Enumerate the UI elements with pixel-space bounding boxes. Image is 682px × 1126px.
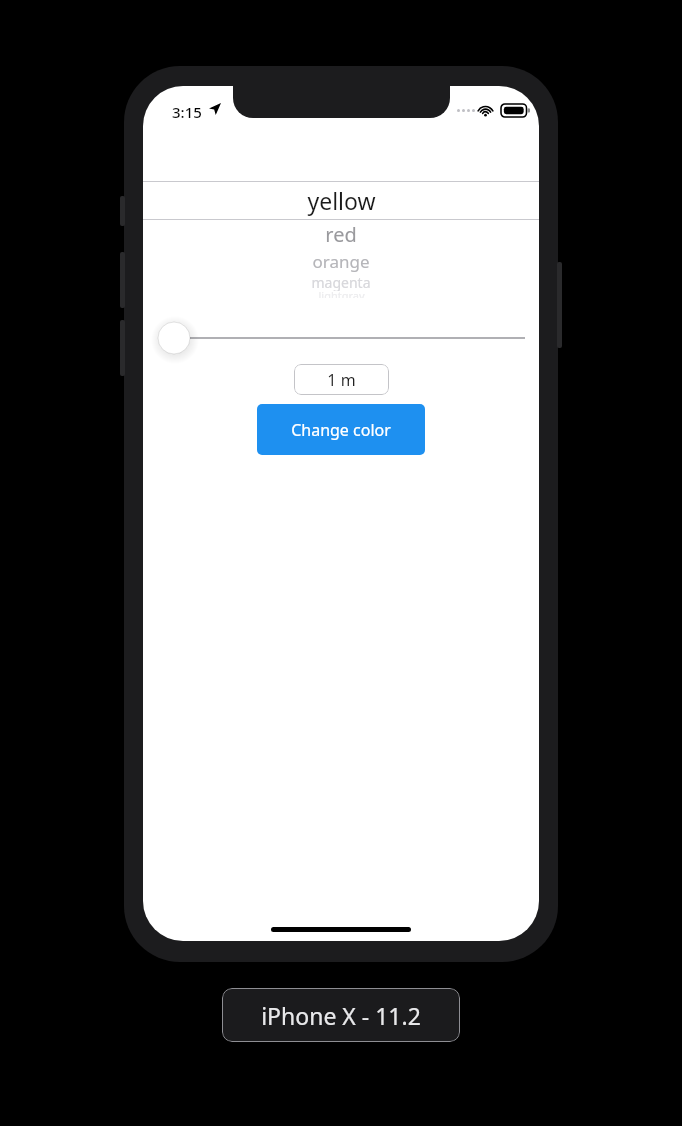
staticText: orange bbox=[312, 250, 370, 273]
other: Battery full bbox=[501, 104, 530, 117]
button[interactable]: Change color bbox=[257, 404, 425, 455]
staticText: lightgray bbox=[318, 288, 365, 298]
staticText: red bbox=[325, 221, 357, 248]
staticText: 1 m bbox=[327, 369, 356, 391]
button[interactable]: orange bbox=[143, 249, 539, 274]
button[interactable]: yellow bbox=[143, 182, 539, 219]
staticText: magenta bbox=[311, 273, 371, 291]
staticText: iPhone X - 11.2 bbox=[261, 1000, 421, 1031]
button[interactable]: Value slider bbox=[157, 318, 525, 358]
button[interactable]: magenta bbox=[143, 273, 539, 291]
staticText: yellow bbox=[307, 185, 376, 216]
button[interactable]: red bbox=[143, 220, 539, 249]
other: Location services active bbox=[209, 103, 221, 115]
staticText: 3:15 bbox=[172, 102, 202, 122]
staticText: Change color bbox=[291, 419, 391, 441]
button[interactable]: 1 m bbox=[294, 364, 389, 395]
button[interactable]: iPhone X - 11.2 bbox=[222, 988, 460, 1042]
